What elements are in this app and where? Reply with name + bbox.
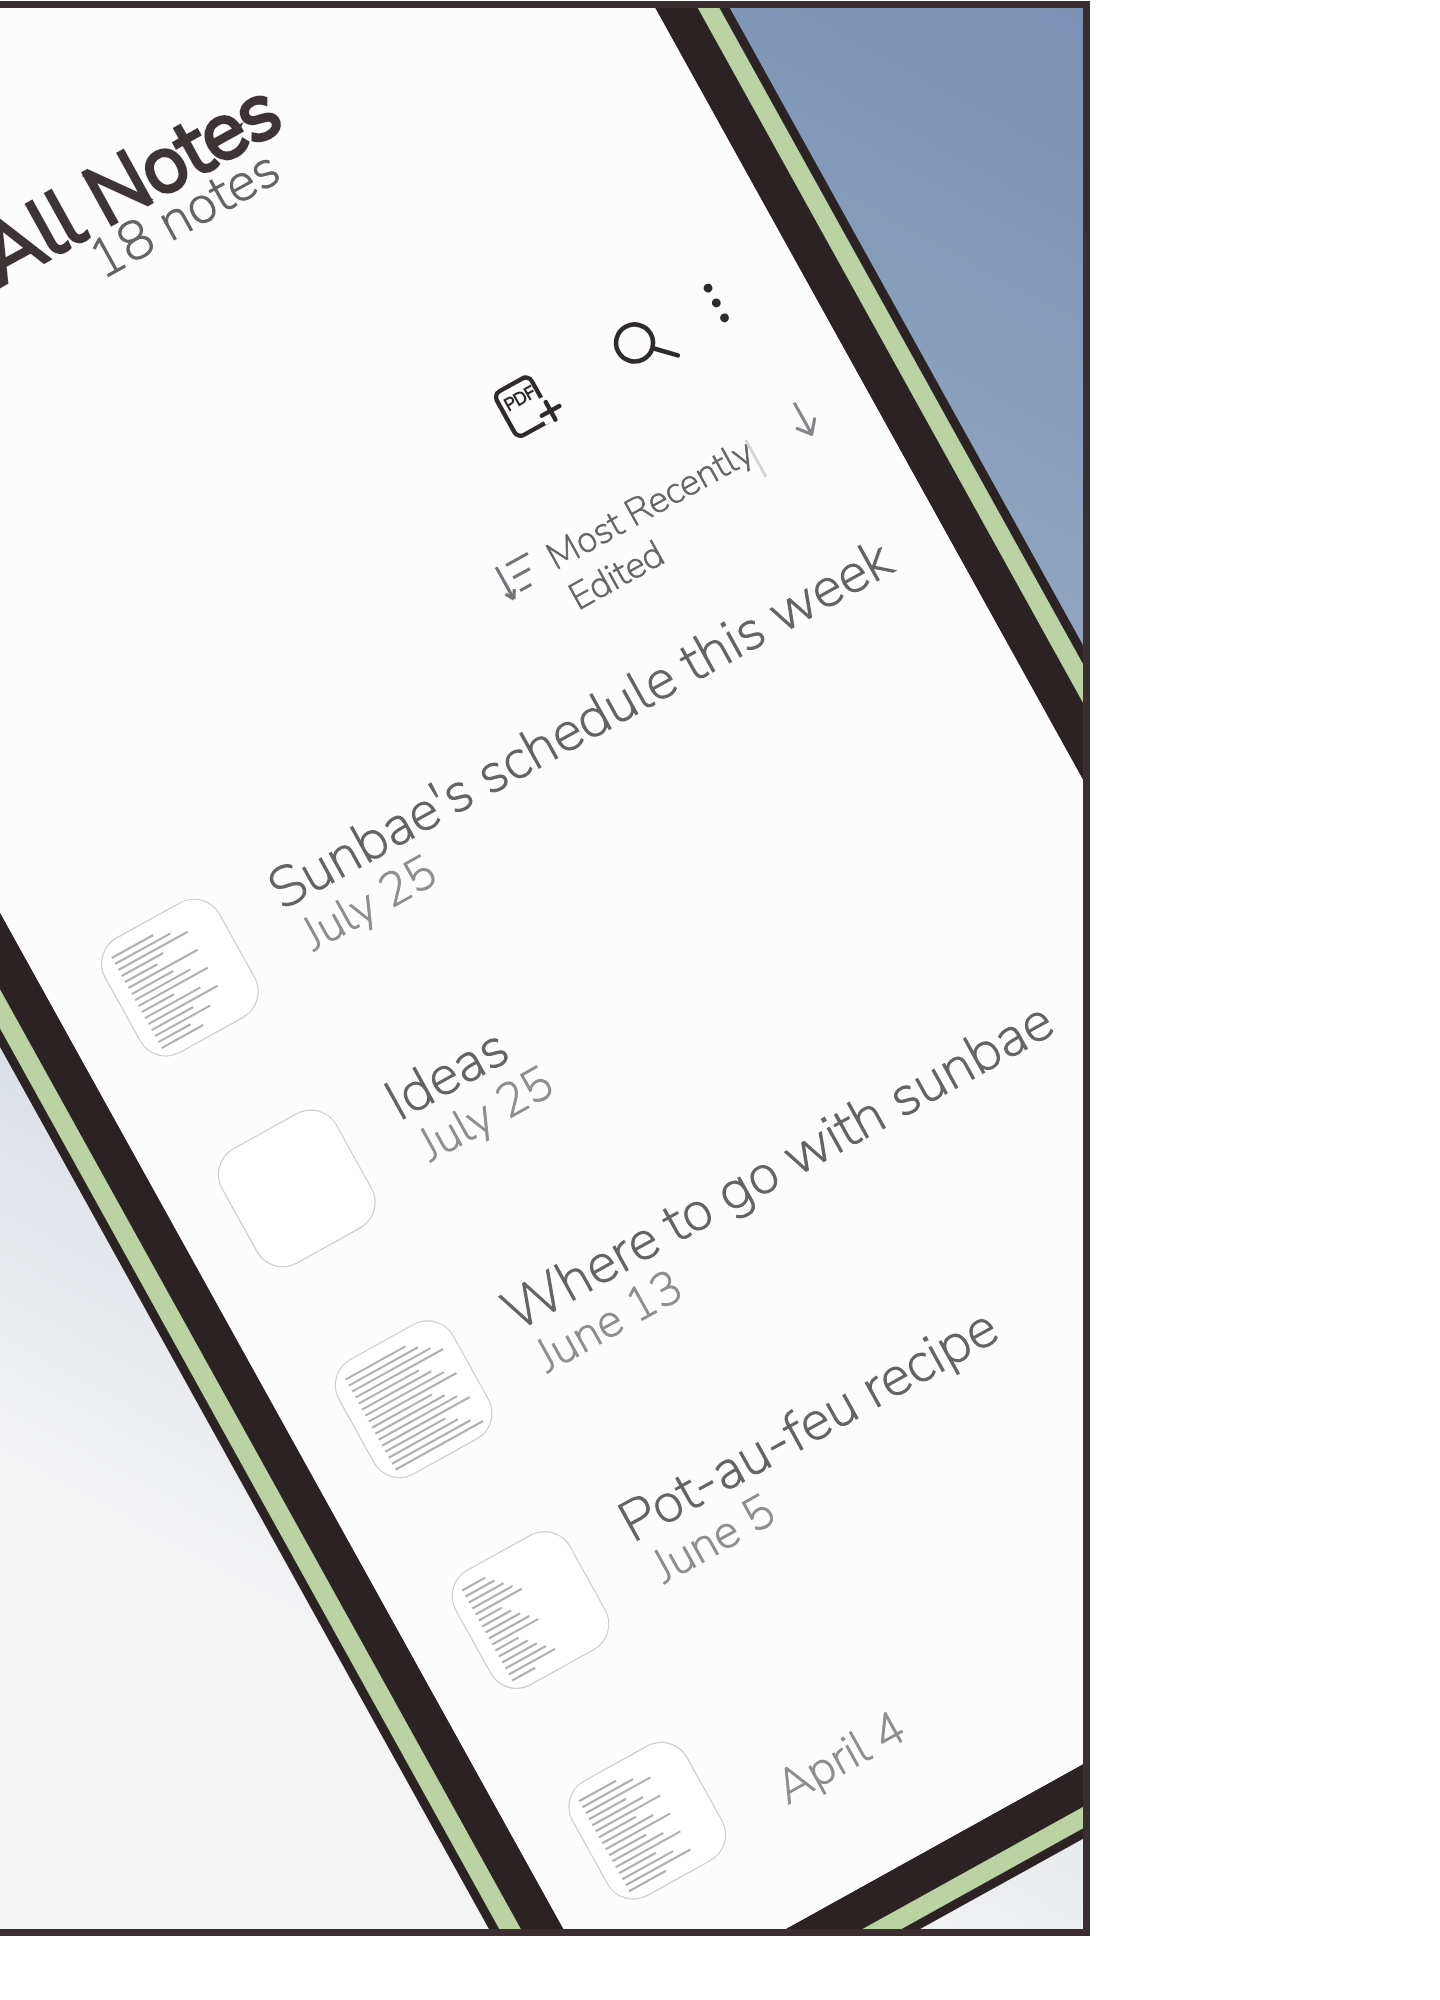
- staticText: Most Recently Edited: [538, 427, 785, 622]
- button[interactable]: Sunbae's schedule this week: [1, 424, 1003, 1125]
- staticText: Where to go with sunbae: [488, 982, 1066, 1349]
- staticText: 18 notes: [75, 131, 293, 297]
- button[interactable]: Ideas: [118, 635, 1090, 1336]
- button[interactable]: Most Recently Edited: [471, 369, 836, 656]
- button[interactable]: Import PDF: [476, 346, 607, 476]
- staticText: All Notes: [0, 55, 300, 310]
- staticText: PDF: [500, 381, 539, 416]
- staticText: June 13: [524, 1254, 694, 1387]
- staticText: Most Recently Edited: [538, 427, 785, 622]
- staticText: July 25: [291, 839, 448, 965]
- staticText: Ideas: [371, 1008, 522, 1138]
- staticText: All Notes: [0, 55, 300, 310]
- staticText: June 13: [524, 1254, 694, 1387]
- button[interactable]: Where to go with sunbae: [235, 845, 1090, 1547]
- staticText: June 5: [641, 1479, 786, 1598]
- staticText: Sunbae's schedule this week: [255, 520, 905, 927]
- staticText: July 25: [408, 1050, 565, 1176]
- staticText: Pot-au-feu recipe: [605, 1288, 1011, 1560]
- staticText: Sunbae's schedule this week: [255, 520, 905, 927]
- button[interactable]: Pot-au-feu recipe: [351, 1056, 1090, 1758]
- button[interactable]: All Notes: [0, 55, 300, 310]
- staticText: 18 notes: [75, 131, 293, 297]
- staticText: April 4: [764, 1696, 916, 1819]
- staticText: July 25: [291, 839, 448, 965]
- staticText: PDF: [500, 381, 539, 416]
- staticText: July 25: [408, 1050, 565, 1176]
- staticText: Where to go with sunbae: [488, 982, 1066, 1349]
- button[interactable]: April 4: [468, 1267, 1090, 1936]
- staticText: Pot-au-feu recipe: [605, 1288, 1011, 1560]
- button[interactable]: More options: [658, 241, 789, 371]
- staticText: Ideas: [371, 1008, 522, 1138]
- staticText: June 5: [641, 1479, 786, 1598]
- button[interactable]: Search: [580, 281, 710, 411]
- staticText: April 4: [764, 1696, 916, 1819]
